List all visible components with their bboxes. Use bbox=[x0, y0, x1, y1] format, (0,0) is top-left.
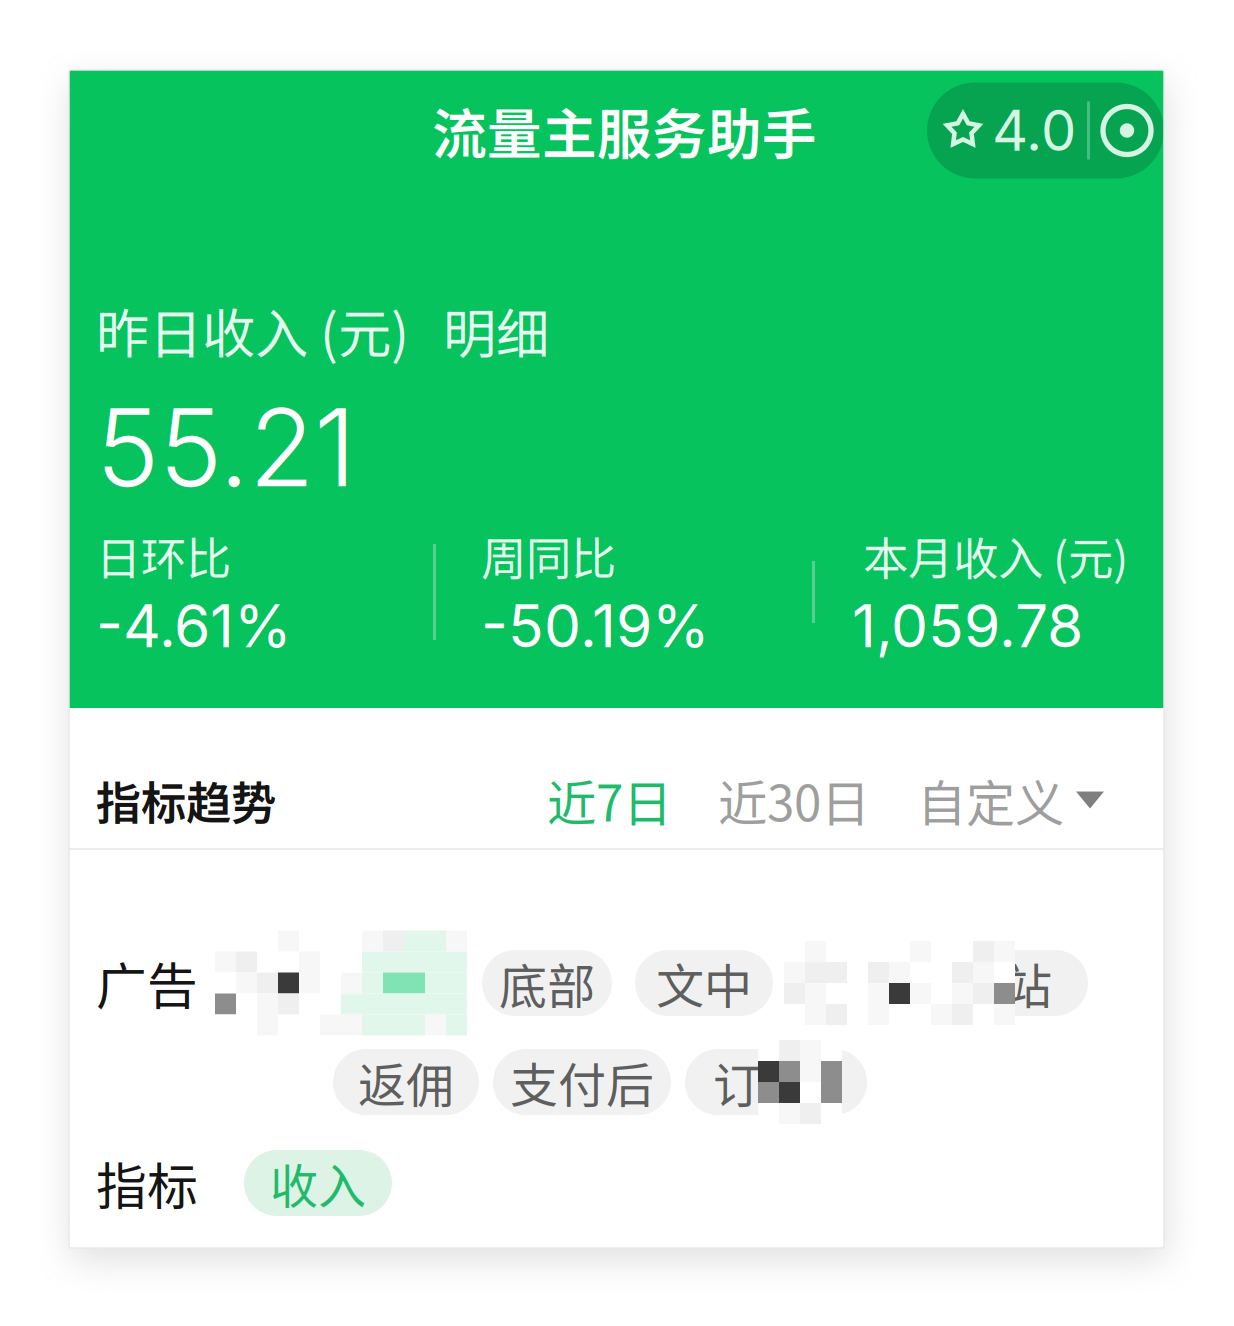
staticText: -4.61% bbox=[96, 590, 292, 661]
button[interactable]: Mini program menu bbox=[1090, 82, 1164, 178]
staticText: 收入 bbox=[270, 1148, 366, 1218]
staticText: 明细 bbox=[443, 292, 549, 369]
button[interactable]: 4.0 bbox=[927, 82, 1087, 178]
button[interactable]: 支付后 bbox=[493, 1049, 671, 1115]
button[interactable]: 明细 bbox=[443, 292, 549, 369]
staticText: 昨日收入 (元) bbox=[96, 292, 409, 369]
staticText: 自定义 bbox=[917, 764, 1064, 836]
button[interactable]: 近7日 bbox=[547, 764, 672, 836]
staticText: 1,059.78 bbox=[852, 590, 1083, 661]
staticText: 底部 bbox=[499, 948, 595, 1018]
staticText: 指标 bbox=[96, 1146, 198, 1220]
staticText: 近7日 bbox=[547, 764, 672, 836]
staticText: 广告 bbox=[96, 946, 198, 1020]
staticText: 指标趋势 bbox=[96, 767, 276, 833]
staticText: 55.21 bbox=[96, 383, 356, 512]
staticText: 流量主服务助手 bbox=[432, 91, 817, 170]
staticText: 文中 bbox=[656, 948, 752, 1018]
button[interactable]: 自定义 bbox=[917, 764, 1104, 836]
button[interactable]: 文中 bbox=[635, 950, 773, 1016]
staticText: 周同比 bbox=[481, 523, 616, 588]
staticText: 本月收入 (元) bbox=[863, 523, 1128, 588]
button[interactable]: 收入 bbox=[244, 1150, 392, 1216]
button[interactable]: 返佣 bbox=[333, 1049, 479, 1115]
staticText: -50.19% bbox=[481, 590, 710, 661]
staticText: 支付后 bbox=[510, 1047, 654, 1117]
staticText: 站 bbox=[1004, 948, 1052, 1018]
staticText: 订 bbox=[713, 1047, 761, 1117]
button[interactable]: 近30日 bbox=[718, 764, 870, 836]
staticText: 近30日 bbox=[718, 764, 870, 836]
staticText: 4.0 bbox=[992, 97, 1076, 164]
button[interactable]: 底部 bbox=[482, 950, 612, 1016]
staticText: 日环比 bbox=[96, 523, 231, 588]
staticText: 返佣 bbox=[358, 1047, 454, 1117]
